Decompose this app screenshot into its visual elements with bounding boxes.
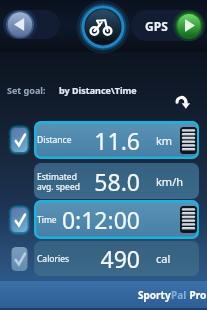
button[interactable]: Toggle Time [8, 205, 31, 235]
staticText: Sporty [138, 288, 171, 302]
staticText: 490 [50, 243, 140, 274]
staticText: Calories [37, 253, 87, 265]
button[interactable]: Change goal [172, 92, 193, 113]
staticText: Distance [37, 134, 87, 146]
button[interactable]: Toggle Distance [0, 121, 207, 159]
staticText: km [156, 133, 192, 148]
button[interactable]: Toggle Time [0, 200, 207, 239]
staticText: 58.0 [50, 166, 140, 197]
button[interactable]: Estimated avg. speed [0, 163, 207, 199]
staticText: km/h [156, 174, 192, 189]
staticText: 0:12:00 [50, 204, 140, 235]
staticText: GPS [145, 18, 168, 34]
staticText: Set goal: [7, 84, 46, 96]
staticText: Pro [187, 288, 207, 302]
button[interactable]: Toggle Calories [8, 244, 31, 274]
button[interactable]: Activity: Cycling [76, 0, 130, 54]
staticText: Time [37, 214, 87, 226]
staticText: Estimated avg. speed [37, 171, 87, 192]
staticText [156, 212, 192, 227]
staticText: Pal [171, 288, 187, 302]
button[interactable]: Back [3, 10, 60, 39]
staticText: by Distance\Time [59, 84, 137, 96]
staticText: 11.6 [50, 125, 140, 156]
staticText: cal [156, 251, 192, 266]
button[interactable]: Toggle Distance [8, 125, 31, 155]
button[interactable]: GPS [131, 10, 205, 41]
button[interactable]: Toggle Calories [0, 241, 207, 276]
